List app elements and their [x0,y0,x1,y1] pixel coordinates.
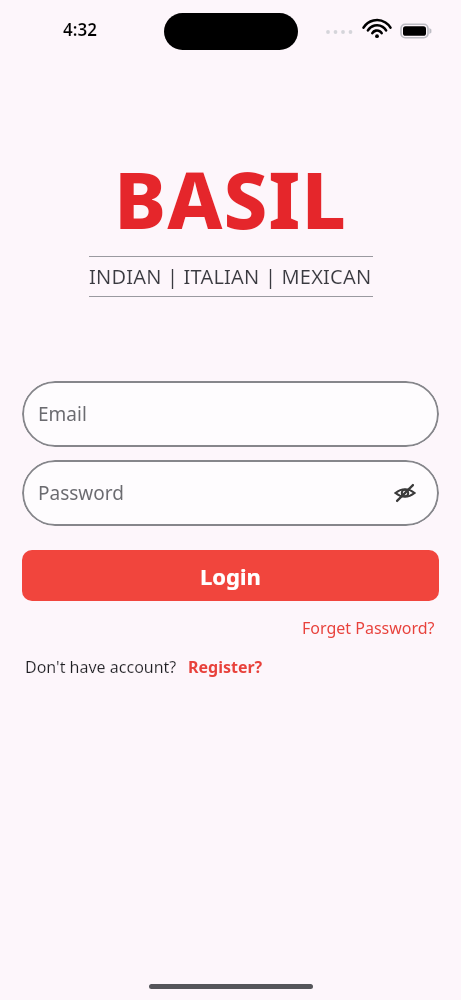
button[interactable]: Register? [188,656,263,678]
staticText: Register? [188,656,263,678]
button[interactable]: Password [22,460,439,526]
staticText: Email [38,401,87,427]
staticText: Forget Password? [302,617,435,639]
button[interactable]: Show password [385,473,425,513]
staticText: Don't have account? [25,656,177,678]
staticText: 4:32 [63,18,97,41]
staticText: Password [38,480,124,506]
staticText: BASIL [114,146,347,252]
button[interactable]: Forget Password? [298,613,439,643]
staticText: INDIAN | ITALIAN | MEXICAN [89,263,372,290]
button[interactable]: Email [22,381,439,447]
button[interactable]: Login [22,550,439,601]
staticText: Login [200,561,261,591]
